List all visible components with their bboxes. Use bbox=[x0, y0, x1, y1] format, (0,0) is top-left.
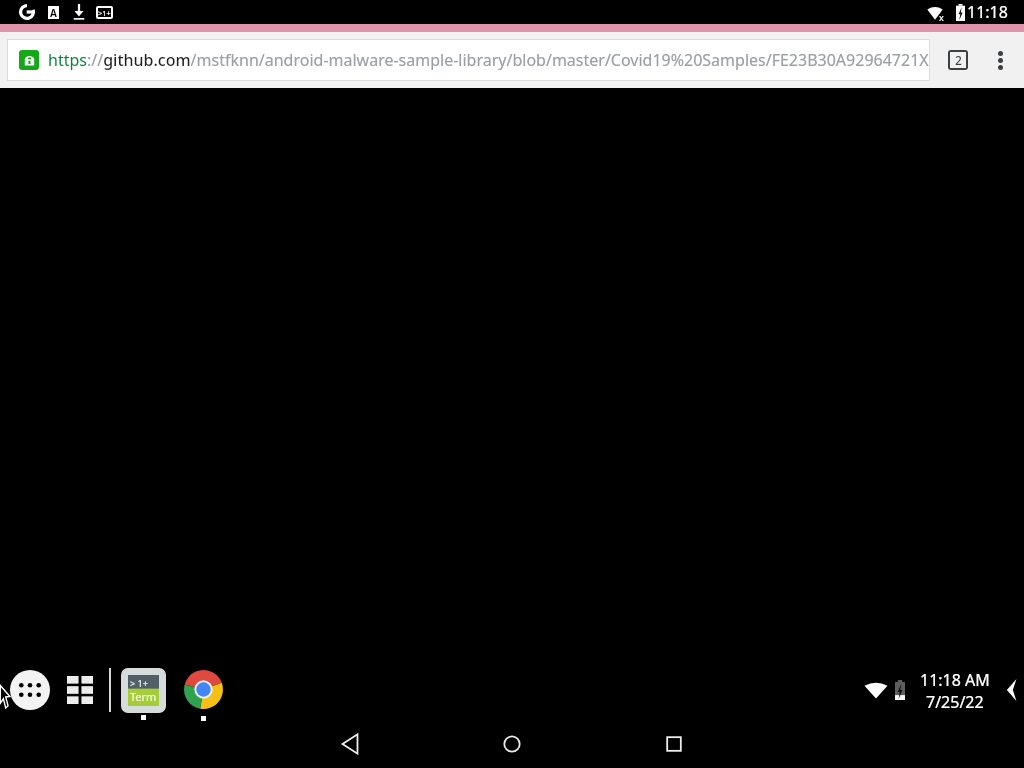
button[interactable]: https://github.com/mstfknn/android-malwa… bbox=[8, 40, 929, 80]
button[interactable]: Tabs bbox=[940, 42, 976, 78]
staticText: x bbox=[939, 11, 944, 23]
staticText: 7/25/22 bbox=[926, 691, 984, 713]
button[interactable]: All apps bbox=[10, 670, 50, 710]
staticText: 11:18 AM bbox=[920, 669, 990, 691]
button[interactable]: Terminal bbox=[121, 668, 166, 713]
button[interactable]: App grid bbox=[64, 674, 96, 706]
staticText: A bbox=[50, 6, 57, 19]
staticText: >1+ bbox=[98, 8, 111, 17]
button[interactable]: Chrome bbox=[184, 670, 223, 709]
button[interactable]: Back bbox=[326, 720, 374, 768]
staticText: 11:18 bbox=[967, 1, 1008, 23]
staticText: https://github.com/mstfknn/android-malwa… bbox=[48, 49, 929, 71]
staticText: Term bbox=[130, 689, 157, 704]
staticText: 2 bbox=[955, 52, 962, 68]
button[interactable]: More options bbox=[982, 42, 1018, 78]
button[interactable]: Home bbox=[488, 720, 536, 768]
button[interactable]: Expand taskbar bbox=[999, 678, 1023, 702]
staticText: > 1+ bbox=[130, 677, 148, 689]
button[interactable]: Recents bbox=[650, 720, 698, 768]
